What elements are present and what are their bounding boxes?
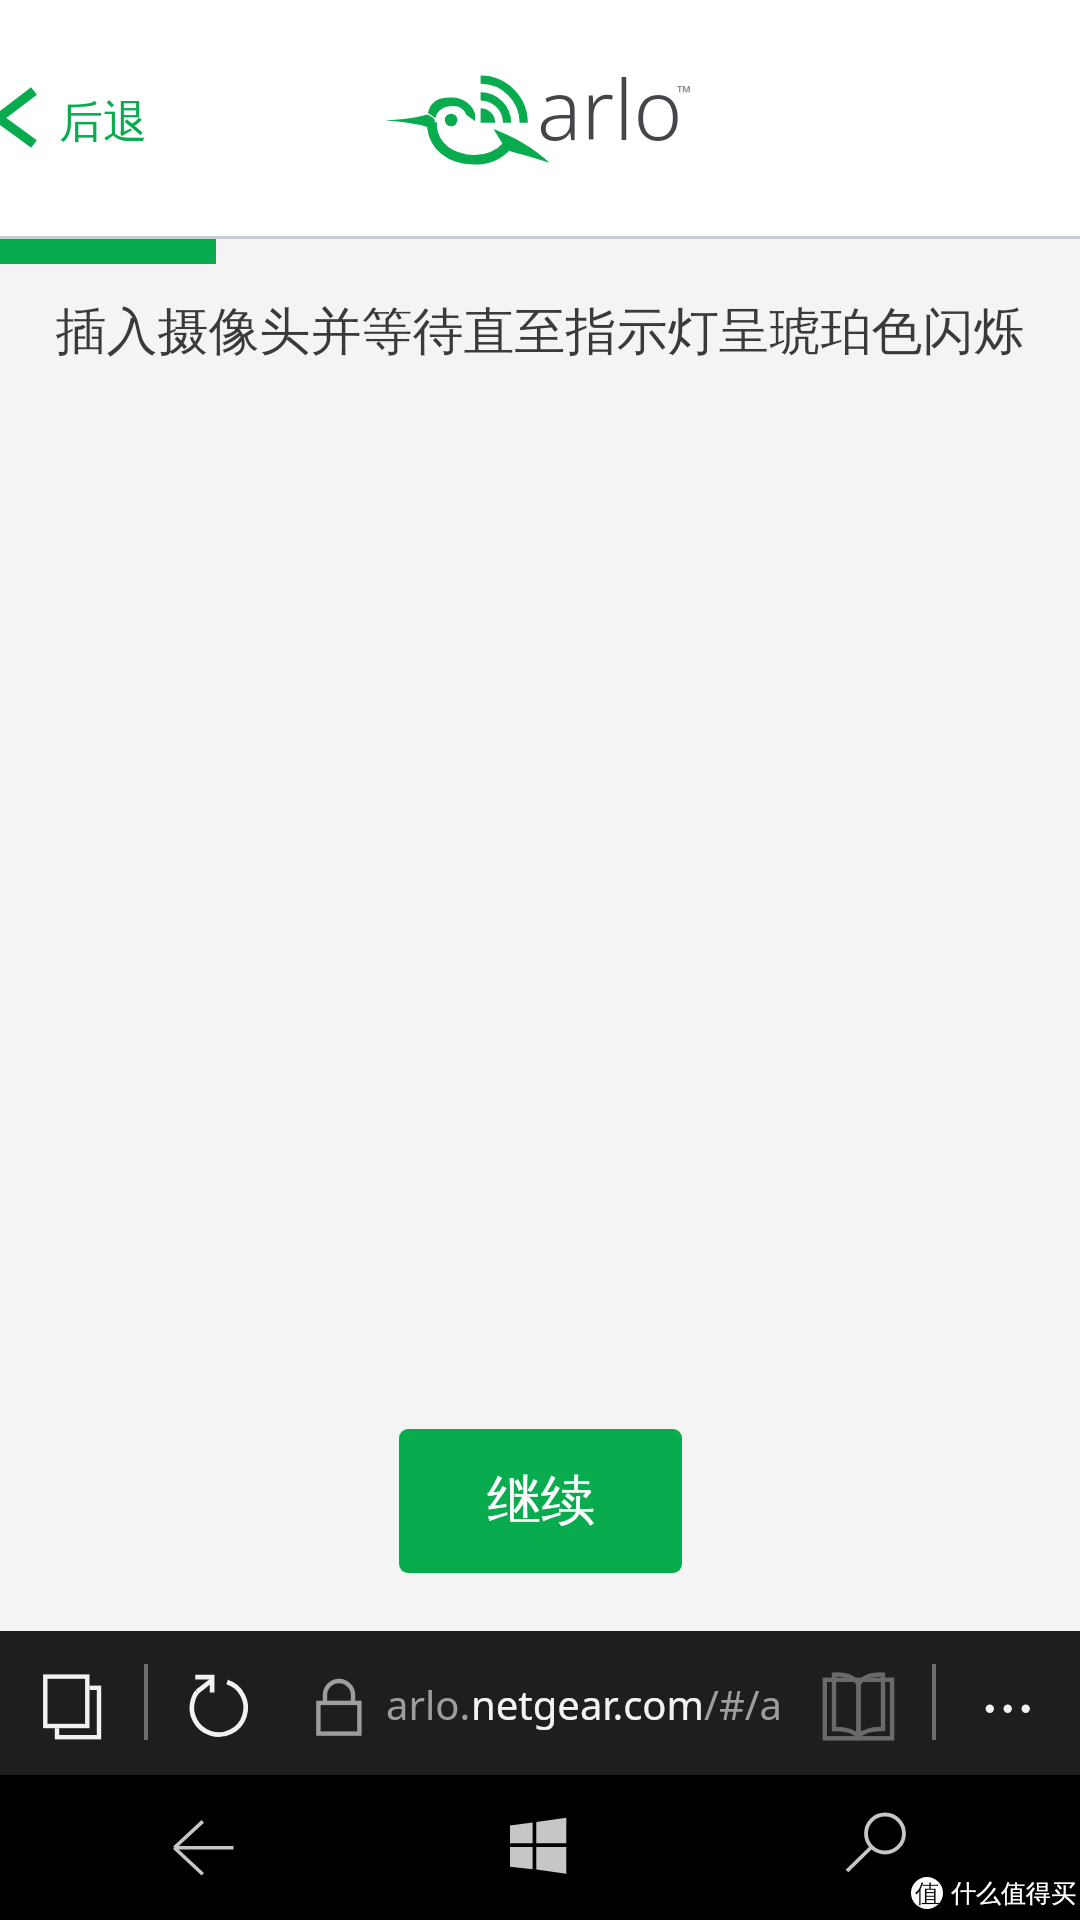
staticText: /#/a [704,1677,783,1731]
staticText: 继续 [487,1467,595,1535]
button[interactable]: 后退 [0,78,160,158]
button[interactable]: Refresh [172,1651,267,1755]
staticText: netgear.com [471,1677,704,1731]
button[interactable]: More [950,1651,1070,1755]
staticText: ™ [677,80,691,105]
staticText: arlo [537,51,683,164]
button[interactable]: Back [148,1797,260,1897]
staticText: arlo. [386,1677,471,1731]
button[interactable]: Search [828,1797,940,1897]
staticText: 后退 [59,95,147,150]
button[interactable]: 继续 [399,1429,682,1573]
staticText: 什么值得买 [951,1878,1076,1909]
button[interactable]: Start [490,1797,586,1897]
staticText: 值 [915,1878,940,1909]
staticText: 插入摄像头并等待直至指示灯呈琥珀色闪烁 [0,300,1080,364]
button[interactable]: Reading view [822,1671,898,1747]
button[interactable]: Tabs [20,1651,120,1755]
